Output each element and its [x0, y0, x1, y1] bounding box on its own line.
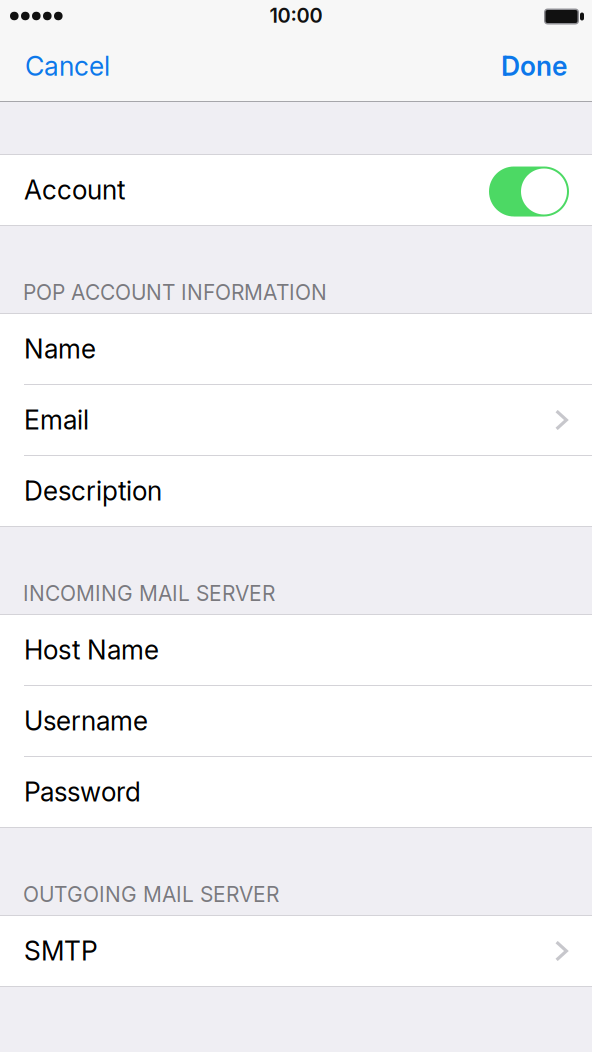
staticText: Done — [501, 50, 567, 82]
button[interactable]: Description — [0, 456, 592, 526]
button[interactable]: Username — [0, 686, 592, 756]
button[interactable]: SMTP — [0, 916, 592, 986]
button[interactable]: Account — [0, 155, 592, 225]
staticText: Password — [24, 776, 141, 808]
staticText: POP ACCOUNT INFORMATION — [23, 280, 327, 305]
staticText: Cancel — [25, 50, 110, 82]
staticText: Email — [24, 404, 89, 436]
staticText: Username — [24, 705, 148, 737]
button[interactable]: Email — [0, 385, 592, 455]
staticText: Name — [24, 333, 96, 365]
button[interactable]: Name — [0, 314, 592, 384]
staticText: Host Name — [24, 634, 159, 666]
button[interactable]: Password — [0, 757, 592, 827]
button[interactable]: Done — [485, 33, 592, 101]
button[interactable]: Cancel — [0, 33, 126, 101]
staticText: Description — [24, 475, 162, 507]
button[interactable]: Host Name — [0, 615, 592, 685]
staticText: INCOMING MAIL SERVER — [23, 581, 275, 606]
staticText: 10:00 — [269, 3, 322, 28]
staticText: OUTGOING MAIL SERVER — [23, 882, 279, 907]
staticText: SMTP — [24, 935, 98, 967]
staticText: Account — [24, 174, 125, 206]
